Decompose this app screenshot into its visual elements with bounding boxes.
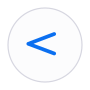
button[interactable]: Back — [8, 8, 82, 82]
